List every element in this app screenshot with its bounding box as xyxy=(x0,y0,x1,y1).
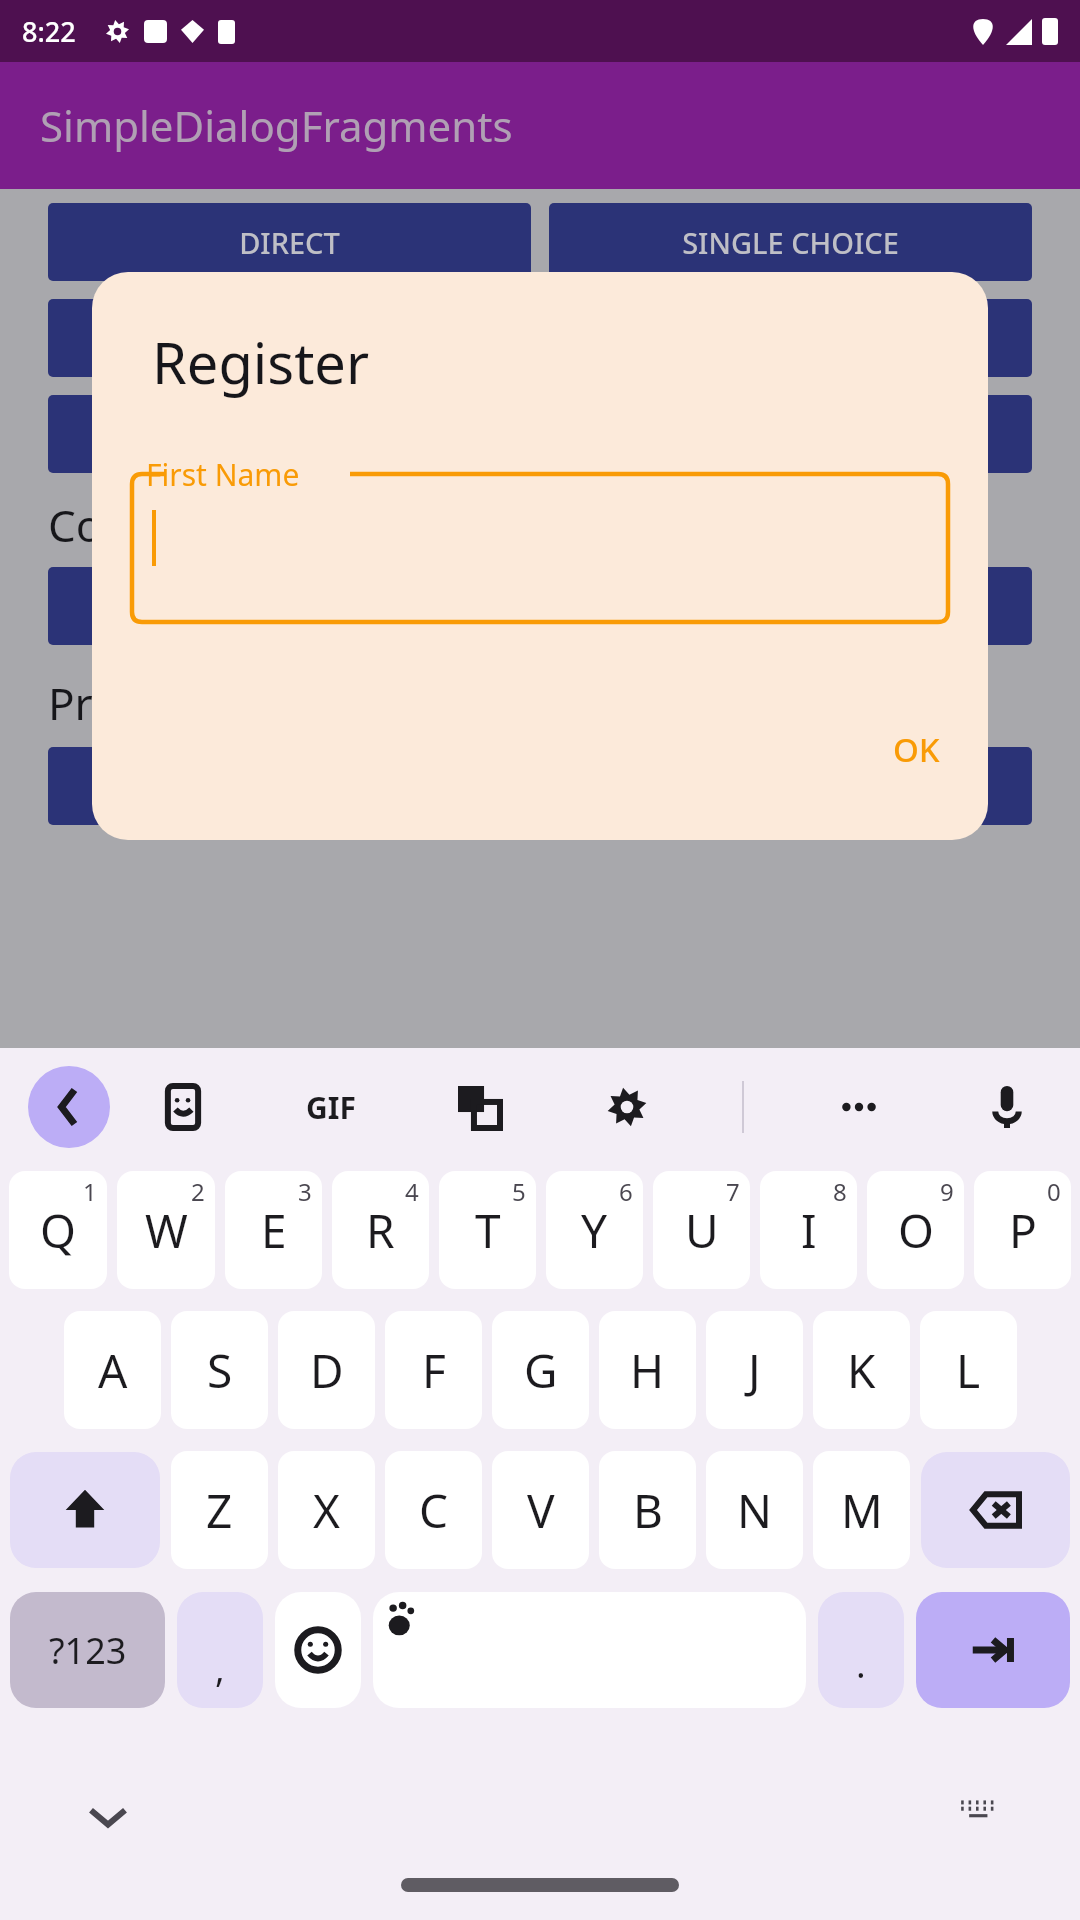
button[interactable]: Z xyxy=(171,1451,268,1569)
staticText: 9 xyxy=(940,1175,954,1208)
button[interactable]: T xyxy=(439,1171,536,1289)
staticText: R xyxy=(366,1199,395,1262)
button[interactable]: D xyxy=(278,1311,375,1429)
button[interactable]: P xyxy=(974,1171,1071,1289)
staticText: DIRECT xyxy=(239,223,340,262)
button[interactable]: E xyxy=(225,1171,322,1289)
button[interactable]: More options xyxy=(826,1074,892,1140)
button[interactable]: V xyxy=(492,1451,589,1569)
staticText: H xyxy=(630,1339,665,1402)
button[interactable]: DIRECT xyxy=(48,203,531,281)
button[interactable] xyxy=(48,567,1032,645)
staticText: 8 xyxy=(833,1175,847,1208)
staticText: F xyxy=(422,1339,446,1402)
button[interactable]: G xyxy=(492,1311,589,1429)
button[interactable]: X xyxy=(278,1451,375,1569)
button[interactable]: H xyxy=(599,1311,696,1429)
staticText: SimpleDialogFragments xyxy=(40,97,513,154)
button[interactable]: Y xyxy=(546,1171,643,1289)
staticText: E xyxy=(261,1199,287,1262)
button[interactable]: , xyxy=(177,1592,263,1708)
staticText: N xyxy=(737,1479,772,1542)
staticText: M xyxy=(841,1479,883,1542)
button[interactable]: I xyxy=(760,1171,857,1289)
button[interactable]: Next xyxy=(916,1592,1070,1708)
button[interactable]: B xyxy=(599,1451,696,1569)
button[interactable]: First Name xyxy=(132,462,948,622)
button[interactable]: Settings xyxy=(594,1074,660,1140)
button[interactable]: K xyxy=(813,1311,910,1429)
staticText: 5 xyxy=(512,1175,526,1208)
staticText: Progress xyxy=(48,673,230,733)
button[interactable]: Translate xyxy=(446,1074,512,1140)
staticText: W xyxy=(145,1199,188,1262)
staticText: , xyxy=(215,1644,225,1693)
button[interactable] xyxy=(48,395,1032,473)
staticText: First Name xyxy=(146,454,300,495)
staticText: C xyxy=(419,1479,449,1542)
button[interactable]: O xyxy=(867,1171,964,1289)
staticText: I xyxy=(801,1199,817,1262)
staticText: V xyxy=(527,1479,555,1542)
staticText: G xyxy=(524,1339,558,1402)
button[interactable]: C xyxy=(385,1451,482,1569)
staticText: X xyxy=(313,1479,340,1542)
button[interactable]: Emoji xyxy=(275,1592,361,1708)
button[interactable]: W xyxy=(117,1171,215,1289)
staticText: S xyxy=(207,1339,233,1402)
staticText: O xyxy=(898,1199,934,1262)
button[interactable]: GIF xyxy=(298,1079,364,1136)
button[interactable]: Back xyxy=(28,1066,110,1148)
button[interactable]: Voice input xyxy=(974,1074,1040,1140)
staticText: 8:22 xyxy=(22,13,76,50)
button[interactable]: M xyxy=(813,1451,910,1569)
button[interactable]: F xyxy=(385,1311,482,1429)
button[interactable] xyxy=(48,299,1032,377)
button[interactable]: Space xyxy=(373,1592,806,1708)
button[interactable]: Backspace xyxy=(921,1452,1070,1568)
button[interactable]: SINGLE CHOICE xyxy=(549,203,1032,281)
button[interactable]: ?123 xyxy=(10,1592,165,1708)
staticText: Q xyxy=(40,1199,76,1262)
button[interactable]: U xyxy=(653,1171,750,1289)
button[interactable]: A xyxy=(64,1311,161,1429)
button[interactable]: . xyxy=(818,1592,904,1708)
button[interactable]: Change keyboard xyxy=(950,1787,1010,1847)
staticText: ?123 xyxy=(49,1626,127,1675)
button[interactable]: OK xyxy=(871,715,962,784)
button[interactable]: INDETERMINATE xyxy=(48,747,450,825)
staticText: OK xyxy=(893,727,940,772)
staticText: J xyxy=(748,1339,761,1402)
staticText: A xyxy=(98,1339,128,1402)
button[interactable]: Hide keyboard xyxy=(78,1787,138,1847)
staticText: B xyxy=(633,1479,663,1542)
button[interactable]: R xyxy=(332,1171,429,1289)
staticText: Y xyxy=(581,1199,608,1262)
staticText: Z xyxy=(206,1479,233,1542)
button[interactable]: S xyxy=(171,1311,268,1429)
button[interactable]: L xyxy=(920,1311,1017,1429)
staticText: 7 xyxy=(726,1175,740,1208)
staticText: 0 xyxy=(1047,1175,1061,1208)
button[interactable]: J xyxy=(706,1311,803,1429)
staticText: 1 xyxy=(83,1175,97,1208)
button[interactable]: Stickers xyxy=(150,1074,216,1140)
button[interactable]: Shift xyxy=(10,1452,160,1568)
staticText: Register xyxy=(152,324,370,400)
staticText: 4 xyxy=(405,1175,419,1208)
staticText: T xyxy=(475,1199,501,1262)
staticText: GIF xyxy=(306,1087,356,1128)
staticText: L xyxy=(956,1339,981,1402)
button[interactable]: N xyxy=(706,1451,803,1569)
button[interactable]: CIRCULAR xyxy=(720,747,1032,825)
button[interactable]: Q xyxy=(9,1171,107,1289)
staticText: 6 xyxy=(619,1175,633,1208)
staticText: U xyxy=(685,1199,719,1262)
staticText: 3 xyxy=(298,1175,312,1208)
staticText: P xyxy=(1009,1199,1037,1262)
staticText: K xyxy=(847,1339,876,1402)
